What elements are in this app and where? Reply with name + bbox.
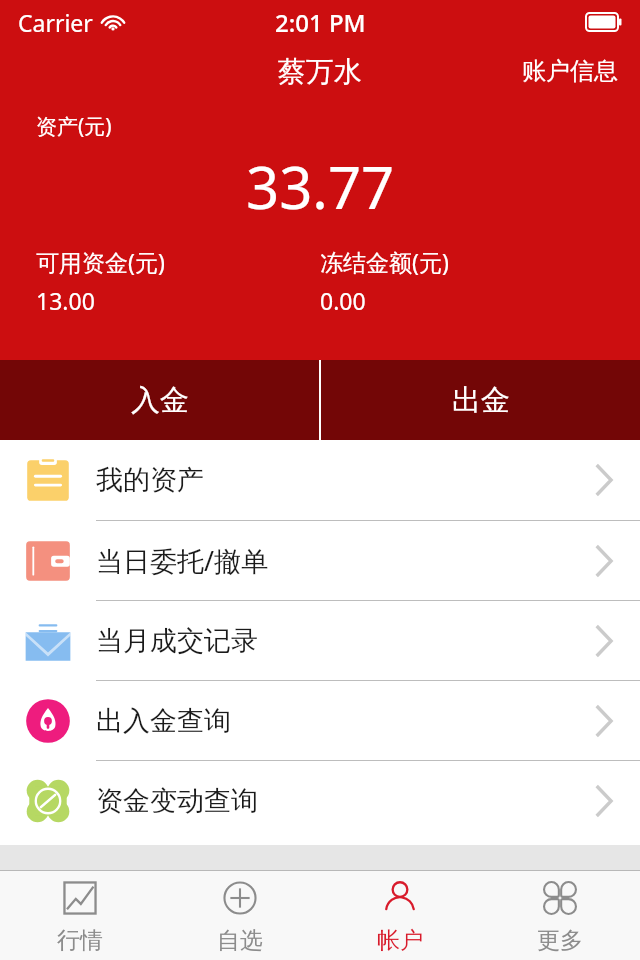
staticText: 蔡万水 [278, 54, 362, 89]
staticText: 资产(元) [36, 112, 112, 141]
button[interactable]: 入金 [0, 360, 319, 440]
staticText: 13.00 [36, 285, 95, 316]
staticText: 2:01 PM [275, 6, 366, 39]
staticText: 账户信息 [522, 56, 618, 86]
staticText: 帐户 [377, 926, 423, 955]
button[interactable]: 账户信息 [500, 48, 640, 94]
staticText: 行情 [57, 926, 103, 955]
button[interactable]: 当月成交记录 [0, 600, 640, 680]
staticText: 0.00 [320, 285, 366, 316]
button[interactable]: 自选 [160, 871, 320, 960]
button[interactable]: 当日委托/撤单 [0, 520, 640, 600]
button[interactable]: 出入金查询 [0, 680, 640, 760]
staticText: 我的资产 [96, 463, 204, 497]
button[interactable]: 更多 [480, 871, 640, 960]
button[interactable]: 行情 [0, 871, 160, 960]
staticText: 冻结金额(元) [320, 246, 449, 277]
staticText: 资金变动查询 [96, 784, 258, 818]
button[interactable]: 我的资产 [0, 440, 640, 520]
button[interactable]: 资金变动查询 [0, 760, 640, 840]
staticText: Carrier [18, 7, 93, 38]
button[interactable]: 出金 [321, 360, 640, 440]
staticText: 自选 [217, 926, 263, 955]
button[interactable]: 帐户 [320, 871, 480, 960]
staticText: 33.77 [246, 147, 395, 226]
staticText: 出金 [452, 382, 510, 419]
staticText: 更多 [537, 926, 583, 955]
staticText: 可用资金(元) [36, 246, 165, 277]
staticText: 入金 [131, 382, 189, 419]
staticText: 当日委托/撤单 [96, 542, 269, 579]
staticText: 出入金查询 [96, 704, 231, 738]
staticText: 当月成交记录 [96, 624, 258, 658]
